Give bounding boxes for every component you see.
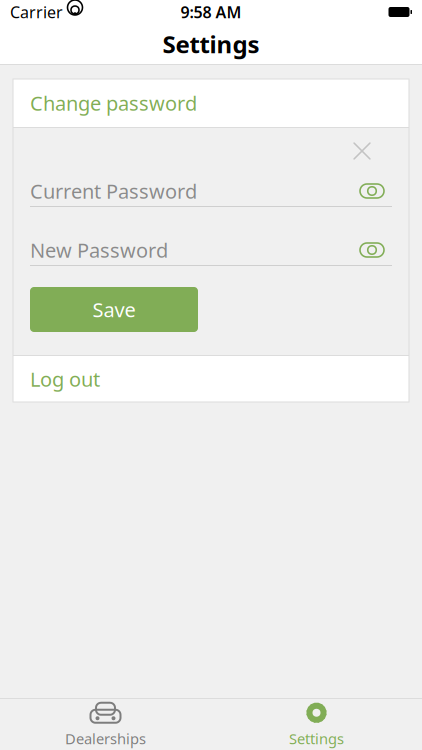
button[interactable]: Settings	[211, 699, 422, 749]
button[interactable]: Show Current Password	[352, 176, 392, 206]
button[interactable]: Close	[342, 134, 382, 168]
staticText: 9:58 AM	[180, 1, 241, 23]
staticText: Current Password	[30, 178, 197, 204]
staticText: Log out	[30, 366, 100, 392]
button[interactable]: Save	[30, 287, 198, 332]
staticText: Settings	[162, 28, 259, 60]
button[interactable]: Show New Password	[352, 235, 392, 265]
staticText: Dealerships	[65, 729, 146, 748]
button[interactable]: Change password	[13, 79, 409, 127]
staticText: Settings	[289, 729, 344, 748]
staticText: Carrier	[10, 1, 63, 23]
button[interactable]: Log out	[13, 356, 409, 402]
staticText: Change password	[30, 90, 197, 116]
staticText: New Password	[30, 237, 168, 263]
button[interactable]: Dealerships	[0, 699, 211, 749]
staticText: Save	[92, 296, 135, 323]
